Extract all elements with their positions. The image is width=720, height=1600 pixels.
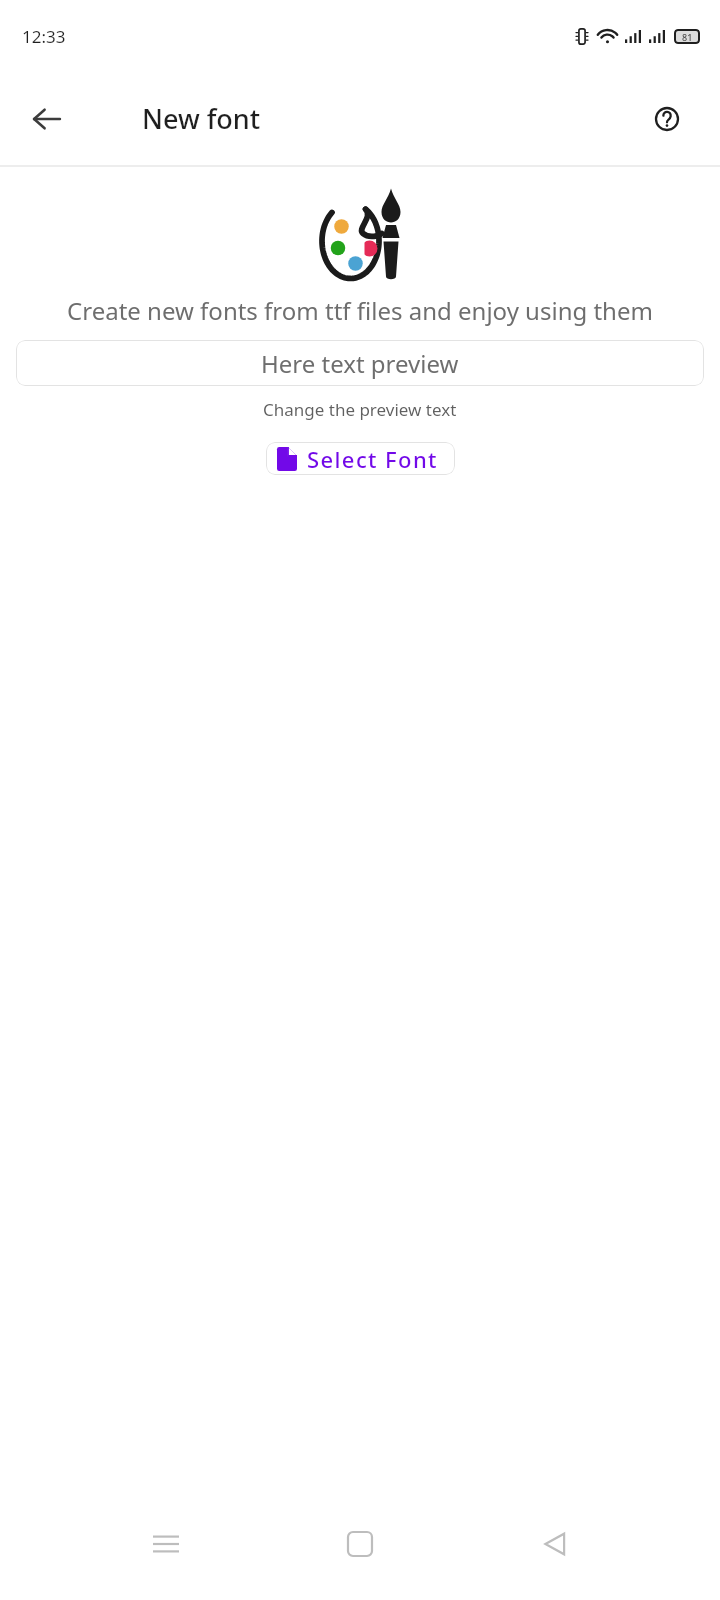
button[interactable]: Home (331, 1515, 389, 1573)
button[interactable]: Select Font (266, 442, 455, 475)
button[interactable]: Back (18, 90, 76, 148)
staticText: Select Font (307, 444, 438, 474)
staticText: New font (142, 100, 261, 137)
button[interactable]: Here text preview (16, 340, 704, 386)
staticText: Create new fonts from ttf files and enjo… (20, 294, 700, 327)
button[interactable]: Recent apps (137, 1515, 195, 1573)
button[interactable]: Back (526, 1515, 584, 1573)
staticText: Change the preview text (263, 398, 457, 421)
button[interactable]: Help (640, 92, 694, 146)
staticText: 12:33 (22, 25, 66, 48)
staticText: 81 (682, 31, 693, 43)
staticText: Here text preview (261, 347, 459, 380)
